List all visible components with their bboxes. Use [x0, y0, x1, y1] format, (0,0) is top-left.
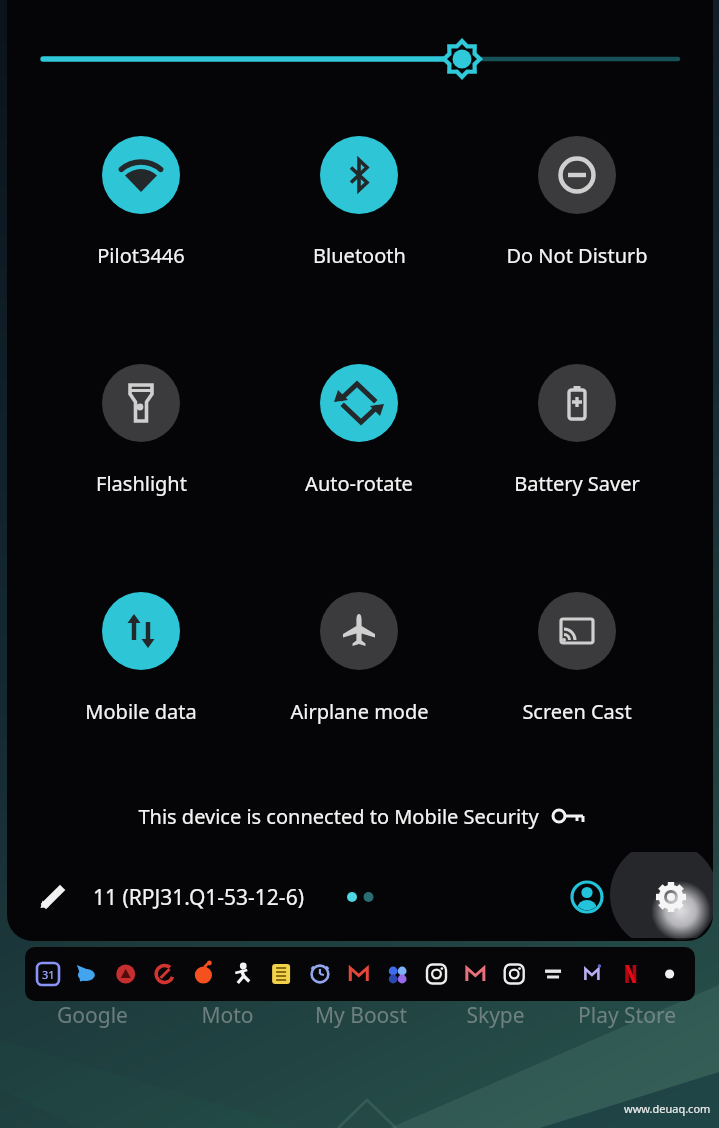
staticText: 11 (RPJ31.Q1-53-12-6) [93, 883, 304, 912]
button[interactable] [320, 364, 398, 442]
staticText: Battery Saver [514, 470, 640, 497]
button[interactable] [538, 592, 616, 670]
staticText: Do Not Disturb [506, 242, 648, 269]
button[interactable] [320, 592, 398, 670]
staticText: Auto-rotate [305, 470, 413, 497]
button[interactable] [28, 877, 72, 917]
staticText: Pilot3446 [97, 242, 185, 269]
staticText: Moto [201, 1001, 254, 1030]
staticText: Play Store [578, 1001, 676, 1030]
staticText: My Boost [315, 1001, 407, 1030]
staticText: Mobile data [85, 698, 197, 725]
staticText: Flashlight [96, 470, 187, 497]
button[interactable]: 31 [25, 947, 695, 1001]
staticText: This device is connected to Mobile Secur… [138, 803, 539, 830]
staticText: Screen Cast [522, 698, 632, 725]
staticText: www.deuaq.com [624, 1101, 711, 1116]
staticText: Google [57, 1001, 128, 1030]
button[interactable] [102, 136, 180, 214]
button[interactable] [649, 874, 695, 920]
staticText: 31 [42, 967, 55, 982]
button[interactable] [320, 136, 398, 214]
staticText: Airplane mode [290, 698, 429, 725]
staticText: Skype [466, 1001, 525, 1030]
button[interactable] [538, 136, 616, 214]
button[interactable] [565, 875, 609, 919]
button[interactable] [102, 592, 180, 670]
button[interactable] [538, 364, 616, 442]
staticText: Bluetooth [313, 242, 406, 269]
button[interactable] [102, 364, 180, 442]
